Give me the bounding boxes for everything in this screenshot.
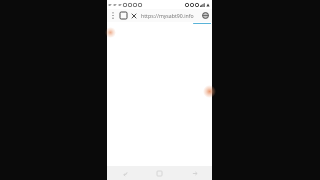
button[interactable]: Switch tabs	[118, 9, 128, 22]
button[interactable]: More options	[109, 9, 116, 22]
button[interactable]: Close tab	[129, 9, 139, 22]
staticText: https://mysabt90.info	[141, 12, 194, 19]
button[interactable]: Account	[200, 9, 211, 22]
button[interactable]: https://mysabt90.info	[141, 9, 199, 22]
button[interactable]: Home	[142, 166, 177, 180]
